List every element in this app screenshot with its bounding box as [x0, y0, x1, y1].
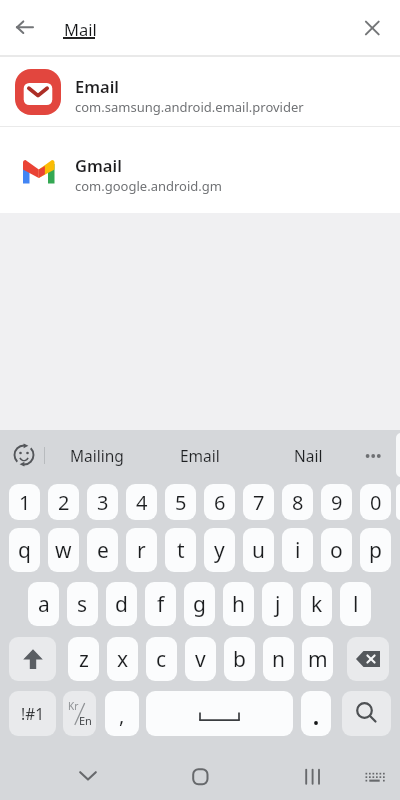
button[interactable]: Gmail [0, 127, 400, 213]
button[interactable]: l [340, 582, 371, 626]
staticText: i [295, 536, 301, 565]
button[interactable]: z [68, 637, 99, 681]
button[interactable]: 5 [165, 484, 196, 520]
button[interactable] [9, 637, 56, 681]
staticText: Nail [294, 445, 323, 466]
button[interactable] [396, 484, 400, 520]
button[interactable]: 8 [282, 484, 313, 520]
button[interactable]: Mailing [57, 430, 137, 480]
button[interactable]: Email [0, 57, 400, 126]
staticText: En [79, 713, 92, 728]
button[interactable]: !#1 [9, 691, 56, 736]
staticText: 4 [136, 489, 148, 516]
staticText: 1 [19, 489, 31, 516]
button[interactable]: g [184, 582, 215, 626]
button[interactable]: p [360, 528, 391, 572]
staticText: x [117, 645, 129, 674]
staticText: d [115, 590, 128, 619]
staticText: c [156, 645, 167, 674]
button[interactable]: Kr [63, 691, 96, 736]
button[interactable]: y [204, 528, 235, 572]
button[interactable]: , [105, 691, 139, 736]
staticText: 9 [331, 489, 343, 516]
staticText: y [214, 536, 225, 565]
button[interactable] [347, 637, 389, 681]
button[interactable] [301, 691, 331, 736]
staticText: h [232, 590, 245, 619]
staticText: f [157, 590, 165, 619]
staticText: s [77, 590, 88, 619]
button[interactable]: t [165, 528, 196, 572]
button[interactable]: 3 [87, 484, 118, 520]
button[interactable] [12, 17, 36, 41]
button[interactable]: n [263, 637, 294, 681]
button[interactable]: v [185, 637, 216, 681]
button[interactable] [192, 768, 209, 785]
staticText: 7 [253, 489, 265, 516]
staticText: o [330, 536, 343, 565]
button[interactable] [361, 448, 385, 464]
staticText: e [97, 536, 109, 565]
button[interactable]: 2 [48, 484, 79, 520]
button[interactable]: h [223, 582, 254, 626]
button[interactable] [364, 771, 385, 784]
button[interactable]: Email [161, 430, 239, 480]
staticText: 0 [370, 489, 382, 516]
staticText: p [369, 536, 382, 565]
button[interactable]: o [321, 528, 352, 572]
staticText: Email [75, 75, 120, 97]
button[interactable]: e [87, 528, 118, 572]
staticText: 5 [175, 489, 187, 516]
button[interactable]: d [106, 582, 137, 626]
button[interactable] [11, 443, 37, 469]
button[interactable]: f [145, 582, 176, 626]
button[interactable]: s [67, 582, 98, 626]
button[interactable]: b [224, 637, 255, 681]
staticText: 8 [292, 489, 304, 516]
staticText: z [79, 645, 89, 674]
staticText: k [311, 590, 323, 619]
button[interactable]: j [262, 582, 293, 626]
staticText: Gmail [75, 154, 122, 176]
staticText: Kr [68, 699, 79, 713]
button[interactable]: u [243, 528, 274, 572]
button[interactable] [361, 17, 383, 39]
button[interactable]: 6 [204, 484, 235, 520]
staticText: Mail [64, 18, 97, 40]
button[interactable]: 9 [321, 484, 352, 520]
staticText: Mailing [70, 445, 124, 466]
staticText: 6 [214, 489, 226, 516]
button[interactable]: c [146, 637, 177, 681]
button[interactable]: q [9, 528, 40, 572]
button[interactable]: a [28, 582, 59, 626]
button[interactable]: 0 [360, 484, 391, 520]
button[interactable]: m [302, 637, 333, 681]
staticText: b [233, 645, 246, 674]
button[interactable] [79, 769, 97, 783]
staticText: !#1 [21, 703, 45, 724]
staticText: com.google.android.gm [75, 177, 222, 195]
button[interactable]: x [107, 637, 138, 681]
button[interactable]: Nail [270, 430, 346, 480]
staticText: 2 [58, 489, 70, 516]
staticText: t [177, 536, 185, 565]
staticText: r [137, 536, 146, 565]
staticText: , [119, 702, 125, 729]
button[interactable]: 4 [126, 484, 157, 520]
staticText: com.samsung.android.email.provider [75, 98, 304, 116]
button[interactable]: r [126, 528, 157, 572]
staticText: n [272, 645, 285, 674]
staticText: g [193, 590, 206, 619]
staticText: v [195, 645, 206, 674]
staticText: q [18, 536, 31, 565]
button[interactable] [342, 691, 391, 736]
staticText: l [353, 590, 359, 619]
button[interactable]: w [48, 528, 79, 572]
button[interactable]: k [301, 582, 332, 626]
staticText: w [55, 536, 72, 565]
button[interactable] [146, 691, 293, 736]
button[interactable]: i [282, 528, 313, 572]
button[interactable]: 1 [9, 484, 40, 520]
button[interactable] [304, 769, 321, 785]
button[interactable]: 7 [243, 484, 274, 520]
